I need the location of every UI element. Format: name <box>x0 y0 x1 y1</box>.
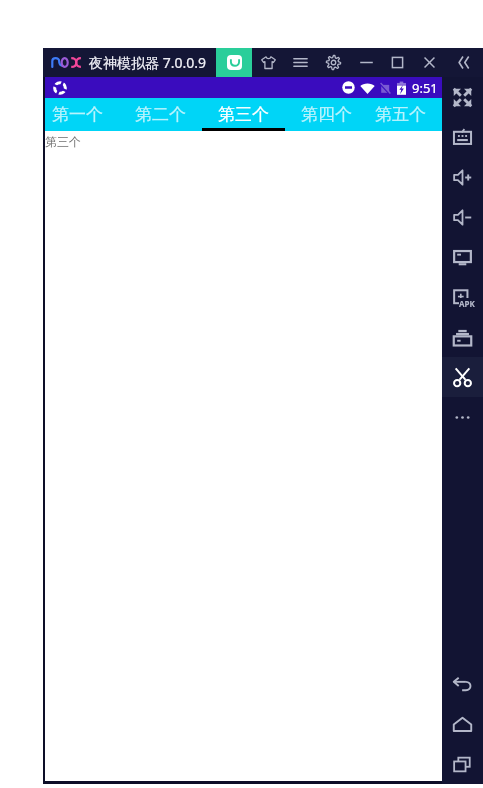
staticText: 9:51 <box>412 79 438 97</box>
staticText: APK <box>459 298 475 309</box>
staticText: 第一个 <box>52 104 103 125</box>
button[interactable]: Recents <box>442 744 483 784</box>
button[interactable]: 第一个 <box>45 98 119 131</box>
button[interactable]: 第五个 <box>368 98 433 131</box>
button[interactable]: Install APK <box>442 277 483 317</box>
staticText: 第四个 <box>301 104 352 125</box>
button[interactable]: More <box>442 397 483 437</box>
button[interactable]: Display <box>442 237 483 277</box>
button[interactable]: Shared folder <box>442 317 483 357</box>
button[interactable]: Volume up <box>442 157 483 197</box>
button[interactable]: Maximize <box>382 48 412 77</box>
button[interactable]: Screenshot <box>442 357 483 397</box>
button[interactable]: Home <box>442 704 483 744</box>
button[interactable]: Back <box>442 664 483 704</box>
button[interactable]: Keyboard <box>442 117 483 157</box>
button[interactable]: Minimize <box>350 48 382 77</box>
staticText: 第三个 <box>45 134 81 149</box>
button[interactable]: 第三个 <box>202 98 285 131</box>
button[interactable]: Close <box>412 48 447 77</box>
staticText: 夜神模拟器 7.0.0.9 <box>89 53 206 72</box>
staticText: 第二个 <box>135 104 186 125</box>
button[interactable]: Fullscreen <box>442 77 483 117</box>
button[interactable]: Current instance <box>216 48 252 77</box>
button[interactable]: Settings <box>316 48 350 77</box>
button[interactable]: 第四个 <box>285 98 368 131</box>
button[interactable]: Shirt <box>252 48 285 77</box>
button[interactable]: 第二个 <box>119 98 202 131</box>
button[interactable]: Volume down <box>442 197 483 237</box>
button[interactable]: Collapse sidebar <box>447 48 482 77</box>
staticText: 第三个 <box>218 104 269 125</box>
button[interactable]: Menu <box>285 48 316 77</box>
staticText: 第五个 <box>375 104 426 125</box>
